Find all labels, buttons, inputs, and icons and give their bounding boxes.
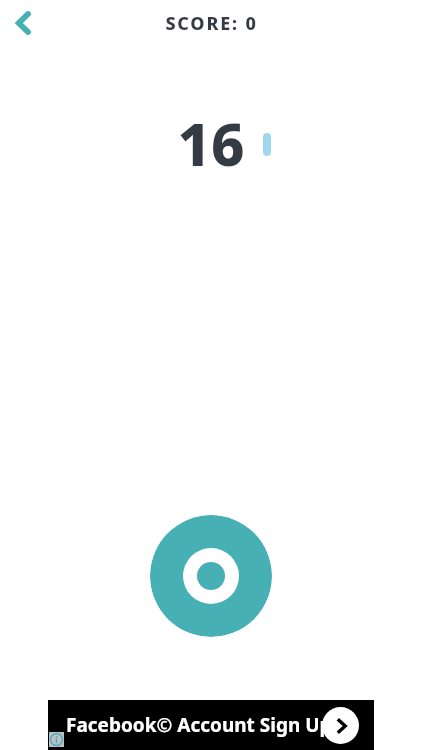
staticText: 16 [177, 104, 245, 174]
button[interactable]: Facebook© Account Sign Up [48, 700, 374, 750]
staticText: SCORE: 0 [165, 11, 258, 36]
button[interactable]: Ad information [49, 732, 64, 747]
button[interactable]: Open advertisement [322, 707, 359, 744]
button[interactable]: Back [0, 0, 46, 46]
staticText: Facebook© Account Sign Up [66, 712, 332, 738]
button[interactable]: Tap target [150, 515, 272, 637]
